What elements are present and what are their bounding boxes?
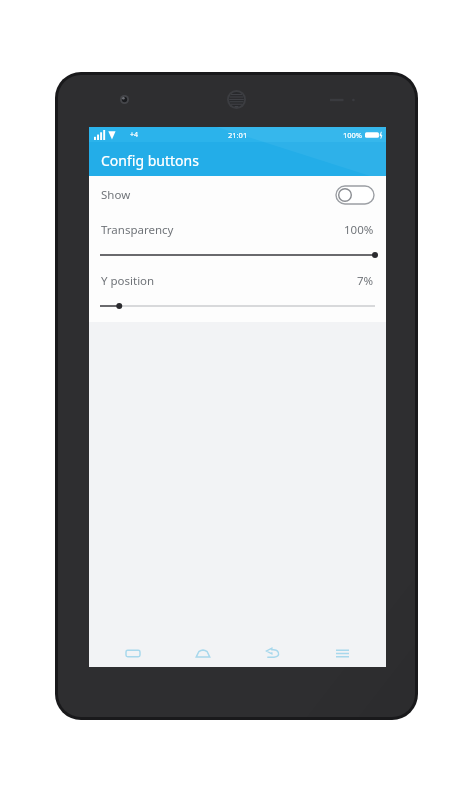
button[interactable]: Show toggle [336, 186, 374, 204]
button[interactable]: Menu [317, 639, 367, 667]
button[interactable]: Show [89, 176, 386, 214]
staticText: Transparency [101, 222, 174, 238]
staticText: Show [101, 187, 131, 203]
staticText: Y position [101, 273, 155, 289]
staticText: +4 [130, 130, 139, 140]
button[interactable]: Home [178, 639, 228, 667]
staticText: 100% [344, 222, 374, 238]
staticText: 7% [357, 273, 374, 289]
staticText: Config buttons [101, 151, 199, 170]
button[interactable]: Back [247, 639, 297, 667]
button[interactable]: Y position [89, 265, 386, 316]
button[interactable]: Transparency [89, 214, 386, 265]
staticText: 100% [343, 130, 363, 140]
staticText: 21:01 [228, 130, 248, 140]
button[interactable]: Recents [108, 639, 158, 667]
